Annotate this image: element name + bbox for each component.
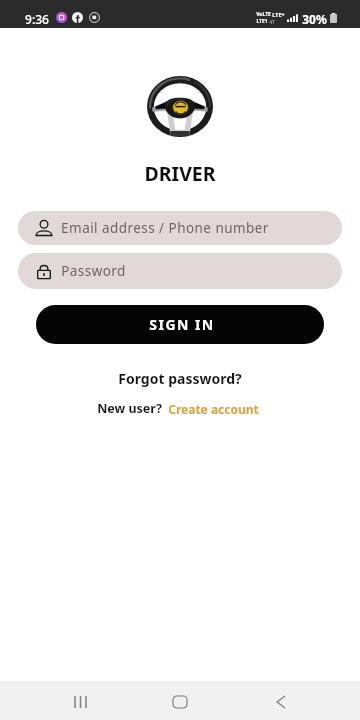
button[interactable]: Forgot password? (112, 366, 248, 391)
button[interactable]: SIGN IN (36, 305, 324, 344)
staticText: Forgot password? (118, 369, 242, 388)
button[interactable]: Password (18, 253, 342, 289)
staticText: DRIVER (144, 160, 216, 187)
staticText: Create account (168, 401, 259, 417)
button[interactable]: Back (241, 682, 321, 720)
staticText: 4T (269, 19, 275, 25)
button[interactable]: Home (140, 682, 220, 720)
staticText: LTE+ (272, 11, 285, 18)
button[interactable]: Email address / Phone number (18, 211, 342, 245)
staticText: 30% (302, 11, 327, 27)
staticText: LTE1 (256, 18, 268, 25)
button[interactable]: Recent apps (40, 682, 120, 720)
staticText: VoLTE (256, 11, 271, 18)
staticText: Email address / Phone number (61, 219, 269, 237)
staticText: Password (61, 262, 126, 280)
staticText: SIGN IN (149, 315, 215, 334)
staticText: 9:36 (25, 11, 49, 27)
staticText: New user? (97, 400, 162, 417)
button[interactable]: Create account (168, 401, 259, 417)
